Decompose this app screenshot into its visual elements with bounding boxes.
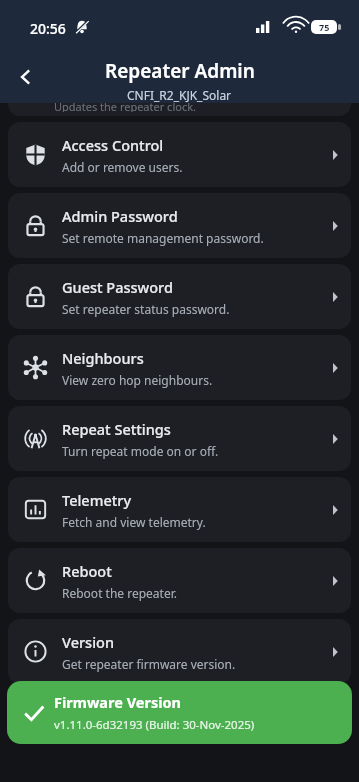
button[interactable]: Neighbours	[8, 335, 351, 400]
staticText: View zero hop neighbours.	[62, 372, 213, 388]
button[interactable]: Guest Password	[8, 264, 351, 329]
staticText: Fetch and view telemetry.	[62, 514, 206, 530]
staticText: Reboot	[62, 561, 112, 581]
staticText: Telemetry	[62, 490, 132, 510]
staticText: 20:56	[30, 19, 66, 38]
staticText: 75	[319, 21, 330, 33]
staticText: Repeat Settings	[62, 419, 171, 439]
staticText: Turn repeat mode on or off.	[62, 443, 219, 459]
staticText: Add or remove users.	[62, 159, 183, 175]
staticText: Access Control	[62, 135, 164, 155]
button[interactable]: Admin Password	[8, 193, 351, 258]
button[interactable]: Telemetry	[8, 477, 351, 542]
button[interactable]: Firmware Version	[7, 681, 352, 744]
button[interactable]: Reboot	[8, 548, 351, 613]
button[interactable]: Back	[8, 59, 44, 95]
staticText: Firmware Version	[54, 692, 182, 712]
staticText: Set remote management password.	[62, 230, 264, 246]
staticText: Version	[62, 632, 114, 652]
button[interactable]: Updates the repeater clock.	[8, 103, 351, 116]
staticText: CNFI_R2_KJK_Solar	[127, 87, 232, 103]
staticText: Reboot the repeater.	[62, 585, 177, 601]
button[interactable]: Access Control	[8, 122, 351, 187]
staticText: Neighbours	[62, 348, 144, 368]
button[interactable]: Version	[8, 619, 351, 684]
button[interactable]: Repeat Settings	[8, 406, 351, 471]
staticText: Set repeater status password.	[62, 301, 230, 317]
staticText: Guest Password	[62, 277, 173, 297]
staticText: Repeater Admin	[105, 58, 255, 84]
staticText: Admin Password	[62, 206, 178, 226]
staticText: v1.11.0-6d32193 (Build: 30-Nov-2025)	[54, 717, 255, 733]
staticText: Updates the repeater clock.	[54, 103, 196, 112]
staticText: Get repeater firmware version.	[62, 656, 236, 672]
